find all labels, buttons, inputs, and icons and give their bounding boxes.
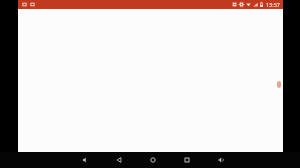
- button[interactable]: Home: [146, 152, 160, 168]
- button[interactable]: Recent apps: [180, 152, 194, 168]
- button[interactable]: Volume up: [214, 152, 228, 168]
- button[interactable]: Scroll indicator: [277, 81, 281, 88]
- button[interactable]: Volume down: [78, 152, 92, 168]
- staticText: 13:57: [265, 1, 280, 8]
- button[interactable]: Back: [112, 152, 126, 168]
